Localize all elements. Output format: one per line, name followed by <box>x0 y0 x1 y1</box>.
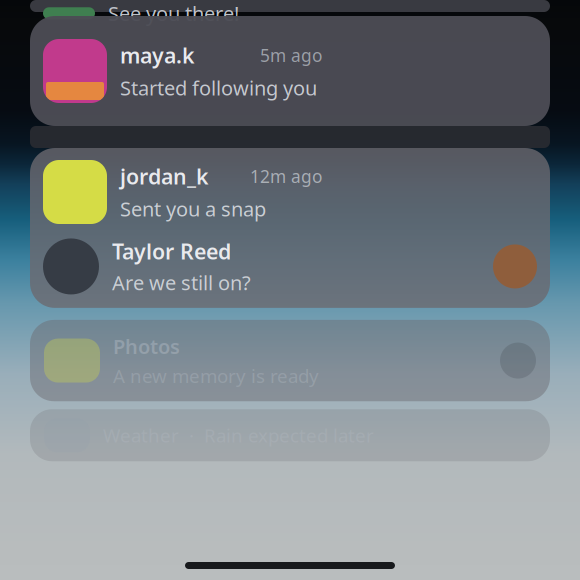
staticText: Taylor Reed <box>112 237 231 265</box>
staticText: 5m ago <box>260 44 322 67</box>
staticText: 12m ago <box>250 165 322 188</box>
staticText: See you there! <box>108 0 239 27</box>
button[interactable]: jordan_k <box>30 148 550 308</box>
staticText: jordan_k <box>120 162 209 190</box>
staticText: Photos <box>113 333 180 359</box>
staticText: Are we still on? <box>112 269 251 296</box>
button[interactable]: Photos <box>30 320 550 401</box>
staticText: maya.k <box>120 41 195 69</box>
button[interactable]: See you there! <box>30 0 550 12</box>
staticText: Sent you a snap <box>120 195 266 222</box>
button[interactable]: Weather · Rain expected later <box>30 409 550 461</box>
staticText: Started following you <box>120 74 317 101</box>
staticText: A new memory is ready <box>113 363 319 388</box>
button[interactable]: maya.k <box>30 16 550 126</box>
